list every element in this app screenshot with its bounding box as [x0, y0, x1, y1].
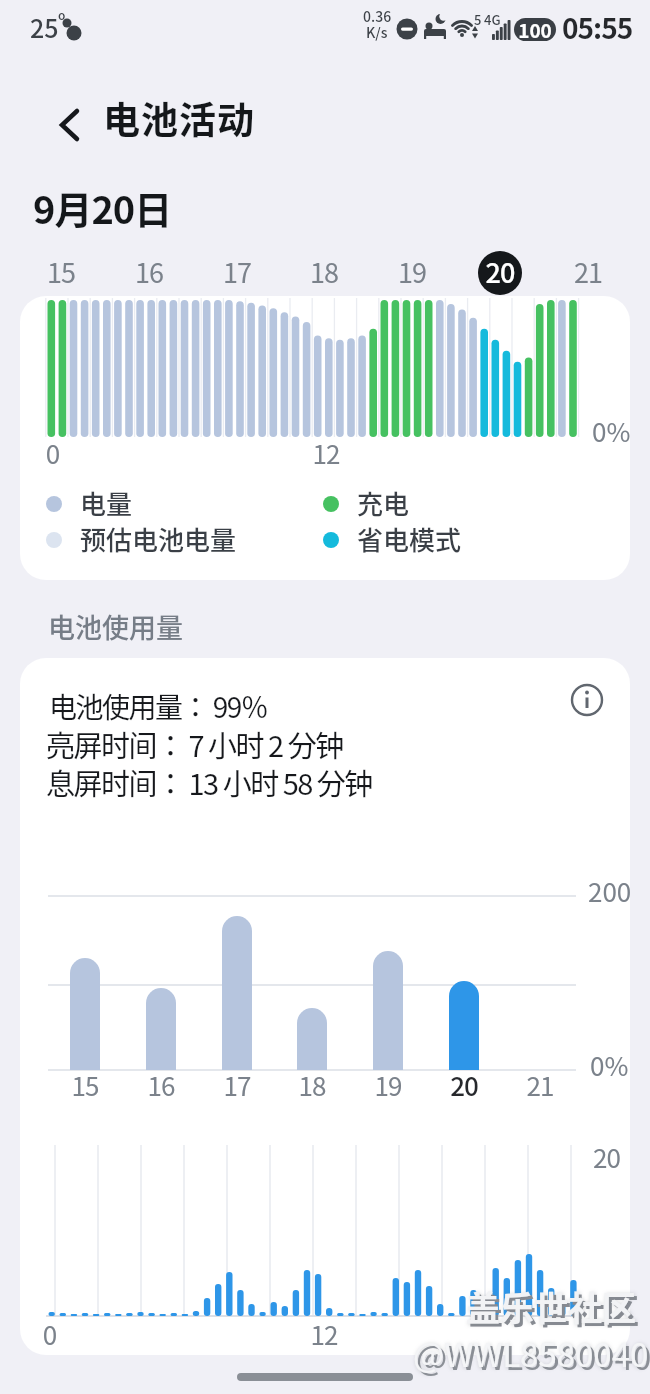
button[interactable] [478, 251, 522, 295]
staticText: 盖乐世社区 [469, 1285, 639, 1334]
staticText: 17 [177, 1066, 297, 1104]
staticText: 21 [528, 252, 648, 291]
staticText: 200 [588, 872, 632, 910]
staticText: 15 [1, 252, 121, 291]
staticText: 盖乐世社区 [466, 1282, 636, 1331]
staticText: 19 [328, 1066, 448, 1104]
button[interactable] [125, 251, 173, 295]
staticText: 0.36 [363, 6, 392, 26]
staticText: 19 [352, 252, 472, 291]
staticText: 21 [480, 1066, 600, 1104]
staticText: 息屏时间： 13 小时 58 分钟 [46, 761, 372, 803]
staticText: 电池使用量： 99％ [49, 686, 268, 727]
button[interactable] [42, 100, 94, 152]
staticText: 省电模式 [357, 520, 462, 558]
staticText: 100 [505, 16, 565, 44]
staticText: 电池使用量 [48, 607, 183, 646]
staticText: 15 [25, 1066, 145, 1104]
staticText: o [58, 6, 66, 23]
staticText: @WWL8580040 [416, 1332, 650, 1380]
staticText: 电量 [80, 484, 133, 522]
button[interactable] [213, 251, 261, 295]
staticText: 0 [0, 1315, 110, 1353]
button[interactable] [565, 678, 609, 722]
staticText: 0% [590, 1046, 629, 1084]
staticText: 预估电池电量 [80, 520, 237, 558]
staticText: 20 [404, 1066, 524, 1104]
staticText: 0 [0, 434, 113, 472]
staticText: 5 [474, 10, 482, 29]
staticText: 20 [440, 252, 560, 291]
staticText: 05:55 [562, 7, 633, 48]
staticText: 亮屏时间： 7 小时 2 分钟 [46, 723, 343, 765]
button[interactable] [388, 251, 436, 295]
staticText: 20 [593, 1138, 620, 1176]
staticText: 16 [101, 1066, 221, 1104]
staticText: 17 [177, 252, 297, 291]
button[interactable] [564, 251, 612, 295]
staticText: 充电 [357, 484, 410, 522]
staticText: 25 [30, 9, 59, 45]
staticText: 电池活动 [103, 91, 255, 145]
staticText: 4G [484, 10, 501, 29]
button[interactable] [37, 251, 85, 295]
staticText: 18 [264, 252, 384, 291]
staticText: 12 [264, 1315, 384, 1353]
staticText: 0% [592, 412, 631, 450]
staticText: 16 [89, 252, 209, 291]
staticText: 9月20日 [33, 180, 172, 235]
staticText: 12 [266, 434, 386, 472]
staticText: K/s [366, 22, 388, 42]
button[interactable] [300, 251, 348, 295]
staticText: 18 [252, 1066, 372, 1104]
staticText: @WWL8580040 [413, 1329, 649, 1377]
